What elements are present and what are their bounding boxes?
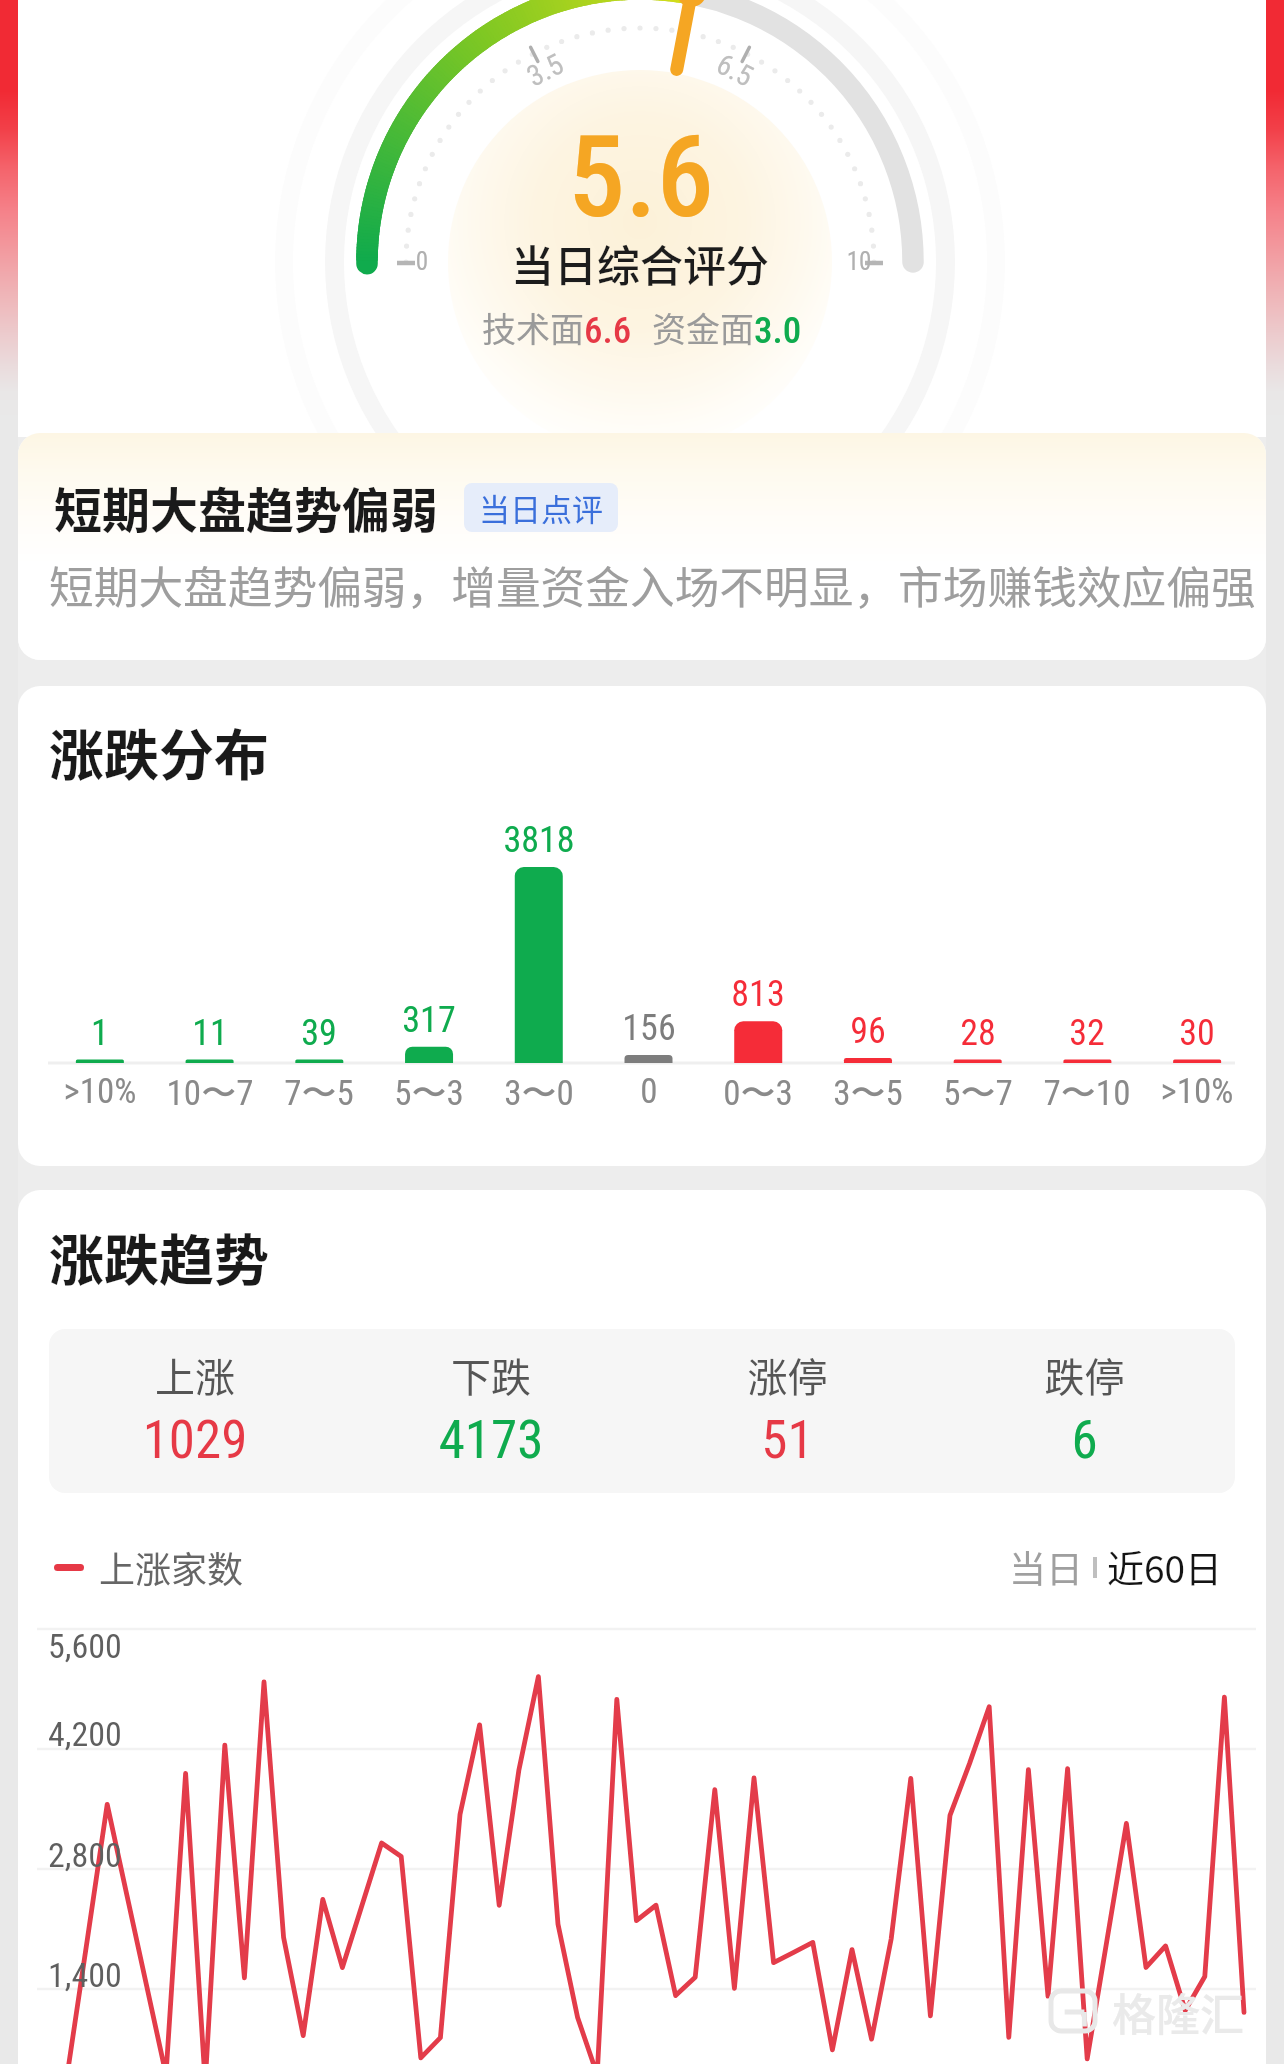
- staticText: 5〜3: [339, 1071, 519, 1115]
- staticText: 3818: [449, 819, 629, 861]
- staticText: 当日: [1009, 1540, 1083, 1594]
- staticText: 格隆汇: [1112, 1980, 1244, 2044]
- staticText: 上涨: [49, 1346, 343, 1404]
- staticText: 1: [18, 1012, 190, 1054]
- staticText: 6.5: [705, 43, 765, 96]
- staticText: 0: [559, 1071, 739, 1112]
- staticText: 5,600: [48, 1626, 122, 1666]
- staticText: 近60日: [1107, 1540, 1223, 1594]
- button[interactable]: 下跌: [345, 1329, 641, 1493]
- staticText: 短期大盘趋势偏弱: [54, 472, 439, 542]
- staticText: 当日点评: [479, 485, 603, 530]
- staticText: 当日综合评分: [360, 232, 920, 294]
- staticText: 4173: [343, 1409, 639, 1471]
- staticText: 1029: [49, 1409, 343, 1471]
- staticText: 28: [888, 1012, 1068, 1054]
- button[interactable]: 近60日: [1097, 1532, 1233, 1602]
- staticText: 317: [339, 999, 519, 1041]
- staticText: 3.5: [515, 43, 575, 96]
- staticText: 下跌: [343, 1346, 639, 1404]
- staticText: 技术面: [482, 303, 584, 352]
- staticText: 5.6: [391, 110, 891, 244]
- staticText: 涨跌分布: [49, 711, 270, 791]
- staticText: 6: [936, 1409, 1233, 1471]
- staticText: 7〜10: [997, 1071, 1177, 1115]
- button[interactable]: 上涨家数: [44, 1533, 254, 1601]
- staticText: 6.6: [584, 309, 632, 352]
- staticText: 10〜7: [120, 1071, 300, 1115]
- staticText: 3〜0: [449, 1071, 629, 1115]
- staticText: 39: [229, 1012, 409, 1054]
- staticText: 32: [997, 1012, 1177, 1054]
- staticText: 4,200: [48, 1714, 122, 1754]
- button[interactable]: 跌停: [938, 1329, 1235, 1493]
- staticText: 1,400: [48, 1955, 122, 1995]
- staticText: 涨停: [639, 1346, 936, 1404]
- staticText: 跌停: [936, 1346, 1233, 1404]
- staticText: 3〜5: [778, 1071, 958, 1115]
- staticText: 短期大盘趋势偏弱，增量资金入场不明显，市场赚钱效应偏强: [49, 552, 1256, 617]
- staticText: 3.0: [754, 309, 802, 352]
- staticText: 96: [778, 1010, 958, 1052]
- button[interactable]: 当日: [999, 1532, 1093, 1602]
- staticText: 10: [819, 247, 899, 276]
- staticText: 5〜7: [888, 1071, 1068, 1115]
- staticText: 0〜3: [668, 1071, 848, 1115]
- staticText: 51: [639, 1409, 936, 1471]
- staticText: 11: [120, 1012, 300, 1054]
- staticText: 30: [1107, 1012, 1266, 1054]
- staticText: >10%: [1107, 1071, 1266, 1112]
- staticText: >10%: [18, 1071, 190, 1112]
- staticText: 涨跌趋势: [49, 1216, 270, 1296]
- staticText: 7〜5: [229, 1071, 409, 1115]
- button[interactable]: 上涨: [49, 1329, 345, 1493]
- staticText: 上涨家数: [99, 1541, 244, 1593]
- button[interactable]: 涨停: [641, 1329, 938, 1493]
- staticText: 813: [668, 973, 848, 1015]
- staticText: 2,800: [48, 1835, 122, 1875]
- button[interactable]: 短期大盘趋势偏弱: [18, 433, 1266, 660]
- staticText: 0: [382, 247, 462, 276]
- staticText: 资金面: [652, 303, 754, 352]
- staticText: 156: [559, 1007, 739, 1049]
